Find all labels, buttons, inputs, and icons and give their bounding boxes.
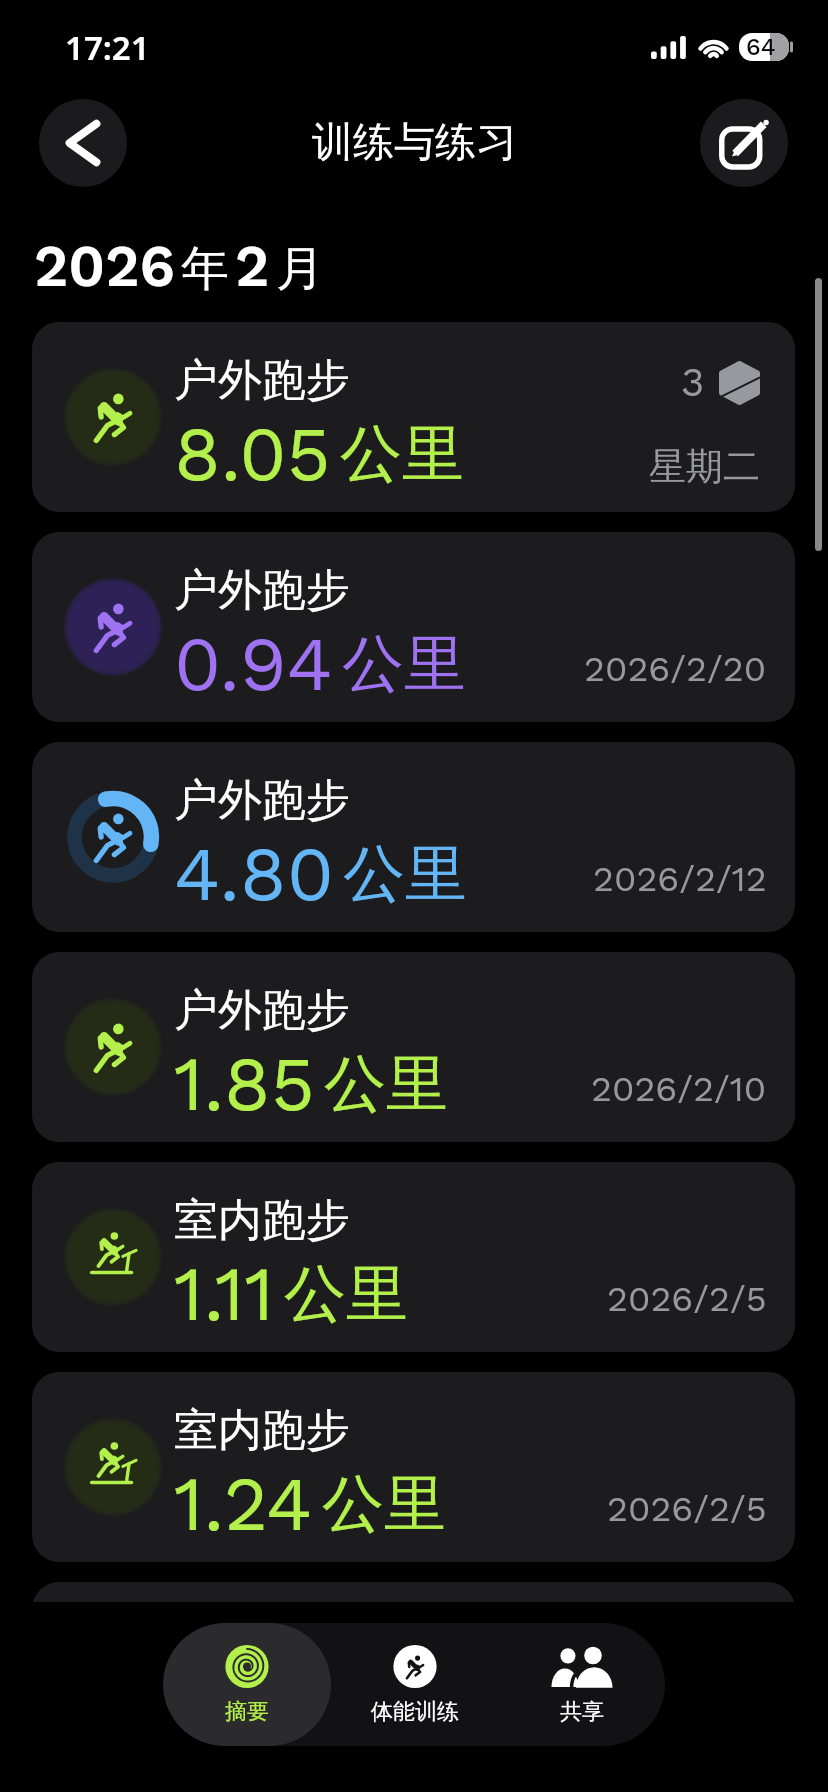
button[interactable]: 体能训练 <box>331 1623 498 1746</box>
button[interactable]: 室内跑步 <box>32 1372 795 1562</box>
staticText: 2026 <box>34 232 175 300</box>
staticText: 1.11 <box>174 1249 275 1338</box>
staticText: 0.94 <box>174 619 333 708</box>
staticText: 星期二 <box>649 443 760 490</box>
staticText: 室内跑步 <box>174 1403 350 1458</box>
staticText: 64 <box>746 33 776 61</box>
staticText: 训练与练习 <box>312 117 517 169</box>
staticText: 8.05 <box>174 409 331 498</box>
staticText: 年 <box>181 239 229 299</box>
staticText: 3 <box>681 359 705 406</box>
staticText: 2026/2/10 <box>591 1068 767 1110</box>
button[interactable]: 户外跑步 <box>32 742 795 932</box>
staticText: 公里 <box>342 625 466 703</box>
staticText: 公里 <box>322 1465 446 1543</box>
staticText: 体能训练 <box>371 1698 459 1726</box>
staticText: 摘要 <box>225 1698 269 1726</box>
staticText: 共享 <box>560 1698 604 1726</box>
staticText: 室内跑步 <box>174 1193 350 1248</box>
button[interactable]: 户外跑步 <box>32 322 795 512</box>
staticText: 1.24 <box>174 1459 313 1548</box>
staticText: 月 <box>276 239 324 299</box>
button[interactable]: Compose <box>700 99 788 187</box>
staticText: 户外跑步 <box>174 983 350 1038</box>
staticText: 2026/2/20 <box>584 648 767 690</box>
staticText: 2026/2/5 <box>607 1278 767 1320</box>
staticText: 2026/2/12 <box>593 858 767 900</box>
button[interactable]: 户外跑步 <box>32 532 795 722</box>
button[interactable]: 室内跑步 <box>32 1162 795 1352</box>
button[interactable]: Back <box>39 99 127 187</box>
staticText: 公里 <box>324 1045 448 1123</box>
staticText: 户外跑步 <box>174 773 350 828</box>
button[interactable]: 户外跑步 <box>32 952 795 1142</box>
staticText: 2 <box>235 232 270 300</box>
staticText: 公里 <box>284 1255 408 1333</box>
staticText: 户外跑步 <box>174 563 350 618</box>
staticText: 17:21 <box>65 25 150 70</box>
staticText: 公里 <box>343 835 467 913</box>
staticText: 4.80 <box>174 829 334 918</box>
staticText: 户外跑步 <box>174 353 350 408</box>
staticText: 2026/2/5 <box>607 1488 767 1530</box>
button[interactable]: 摘要 <box>163 1623 331 1746</box>
staticText: 公里 <box>340 415 464 493</box>
button[interactable]: 共享 <box>498 1623 665 1746</box>
staticText: 1.85 <box>174 1039 315 1128</box>
